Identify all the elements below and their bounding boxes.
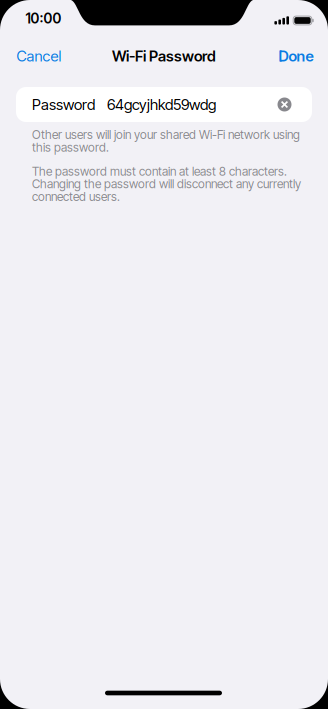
staticText: Changing the password will disconnect an… bbox=[32, 177, 301, 191]
staticText: Other users will join your shared Wi-Fi … bbox=[32, 128, 300, 142]
staticText: The password must contain at least 8 cha… bbox=[32, 164, 287, 178]
button[interactable]: Password bbox=[16, 87, 312, 122]
staticText: 64gcyjhkd59wdg bbox=[107, 96, 216, 113]
staticText: Cancel bbox=[16, 47, 61, 65]
staticText: connected users. bbox=[32, 190, 120, 204]
staticText: Done bbox=[278, 47, 313, 65]
button[interactable]: Done bbox=[278, 47, 313, 65]
staticText: 10:00 bbox=[25, 10, 61, 27]
staticText: this password. bbox=[32, 140, 109, 154]
button[interactable]: Clear text bbox=[277, 97, 291, 111]
staticText: Wi-Fi Password bbox=[112, 47, 216, 65]
staticText: Password bbox=[32, 96, 95, 113]
button[interactable]: Cancel bbox=[16, 47, 61, 65]
